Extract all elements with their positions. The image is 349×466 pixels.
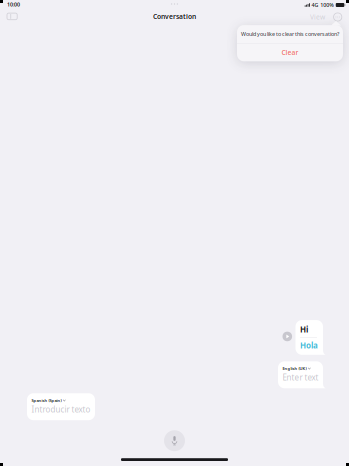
button[interactable]: More options — [331, 11, 344, 23]
staticText: Hola — [300, 340, 318, 351]
staticText: 100% — [320, 1, 334, 9]
button[interactable]: Show sidebar — [4, 11, 20, 23]
button[interactable]: Start speaking — [164, 430, 185, 451]
staticText: Clear — [281, 48, 298, 57]
button[interactable]: English (UK) — [278, 361, 323, 388]
button[interactable]: View — [308, 10, 327, 24]
staticText: 10:00 — [7, 1, 20, 8]
button[interactable]: Play translation — [282, 333, 292, 342]
staticText: Hi — [300, 324, 308, 335]
button[interactable]: Spanish (Spain) — [27, 393, 95, 420]
staticText: View — [310, 13, 325, 21]
button[interactable]: Clear — [237, 43, 343, 61]
staticText: Conversation — [153, 12, 196, 21]
staticText: Spanish (Spain) — [31, 398, 61, 403]
staticText: Enter text — [282, 372, 318, 383]
staticText: Introducir texto — [31, 404, 90, 415]
staticText: 4G — [312, 1, 319, 9]
staticText: English (UK) — [282, 366, 306, 371]
staticText: Would you like to clear this conversatio… — [241, 30, 339, 38]
